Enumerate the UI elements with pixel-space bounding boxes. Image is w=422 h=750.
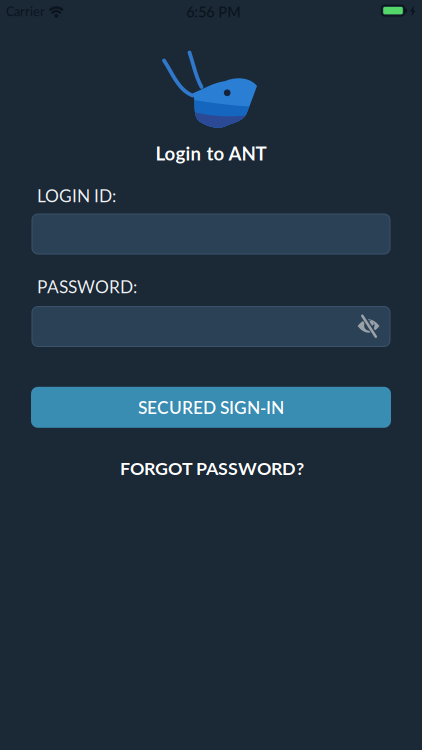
staticText: Carrier: [6, 4, 45, 19]
staticText: FORGOT PASSWORD?: [120, 457, 304, 479]
button[interactable]: [348, 306, 388, 346]
staticText: 6:56 PM: [186, 3, 240, 21]
staticText: SECURED SIGN-IN: [138, 397, 284, 418]
staticText: LOGIN ID:: [37, 185, 116, 206]
staticText: Login to ANT: [155, 142, 266, 164]
button[interactable]: SECURED SIGN-IN: [31, 387, 391, 428]
button[interactable]: FORGOT PASSWORD?: [120, 457, 304, 479]
button[interactable]: [32, 306, 390, 346]
staticText: PASSWORD:: [37, 276, 137, 297]
